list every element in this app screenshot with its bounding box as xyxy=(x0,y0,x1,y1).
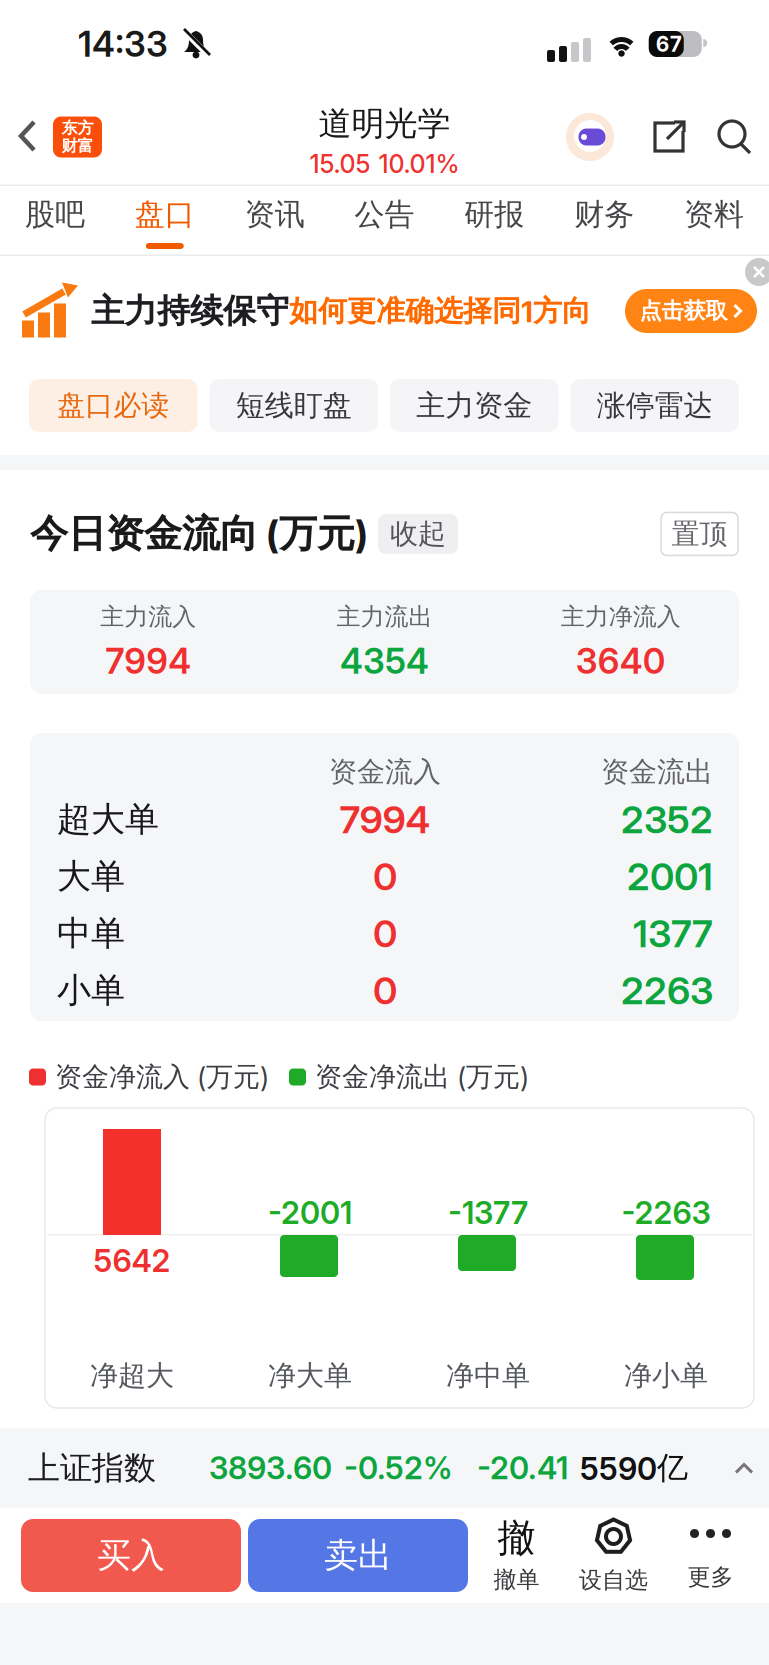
button[interactable]: 置顶 xyxy=(661,512,738,555)
staticText: 财富 xyxy=(61,136,93,156)
staticText: 主力流出 xyxy=(336,602,432,632)
staticText: 0 xyxy=(373,853,397,899)
staticText: 设自选 xyxy=(579,1565,648,1594)
staticText: 14:33 xyxy=(78,23,168,65)
staticText: 3893.60 xyxy=(209,1449,332,1487)
staticText: 中单 xyxy=(57,912,125,955)
staticText: 2263 xyxy=(621,967,713,1013)
button[interactable]: Back xyxy=(0,119,38,155)
staticText: 公告 xyxy=(354,196,414,233)
staticText: 0 xyxy=(373,910,397,956)
staticText: 1377 xyxy=(633,910,713,956)
staticText: 小单 xyxy=(57,969,125,1012)
staticText: 大单 xyxy=(57,855,125,898)
staticText: 上证指数 xyxy=(28,1448,156,1488)
staticText: 如何更准确选择同1方向 xyxy=(289,293,591,329)
staticText: 买入 xyxy=(97,1534,165,1577)
staticText: 道明光学 xyxy=(318,103,450,145)
staticText: 主力资金 xyxy=(416,387,532,424)
staticText: 研报 xyxy=(464,196,524,233)
button[interactable]: 财务 xyxy=(549,186,659,256)
button[interactable]: 资料 xyxy=(659,186,769,256)
staticText: 67 xyxy=(656,31,682,57)
button[interactable]: 收起 xyxy=(378,514,458,554)
staticText: 净小单 xyxy=(624,1358,708,1393)
button[interactable]: 股吧 xyxy=(0,186,110,256)
staticText: 超大单 xyxy=(57,798,159,841)
staticText: 资料 xyxy=(684,196,744,233)
button[interactable]: 撤 xyxy=(468,1517,565,1594)
staticText: -2001 xyxy=(268,1194,352,1231)
staticText: 5642 xyxy=(93,1242,170,1279)
staticText: -20.41 xyxy=(477,1449,568,1487)
staticText: 撤单 xyxy=(493,1565,539,1594)
staticText: 资金流出 xyxy=(601,754,713,790)
staticText: 股吧 xyxy=(25,196,85,233)
staticText: 涨停雷达 xyxy=(597,387,713,424)
staticText: 短线盯盘 xyxy=(236,387,352,424)
staticText: 2352 xyxy=(621,796,713,842)
staticText: 5590亿 xyxy=(580,1448,688,1488)
button[interactable]: 上证指数 xyxy=(0,1428,769,1508)
button[interactable]: Close xyxy=(741,256,769,284)
staticText: 资讯 xyxy=(245,196,305,233)
staticText: 4354 xyxy=(340,640,429,682)
staticText: 置顶 xyxy=(671,516,727,552)
staticText: -1377 xyxy=(448,1194,528,1231)
staticText: 7994 xyxy=(339,796,430,842)
staticText: 盘口必读 xyxy=(57,388,169,423)
button[interactable]: 研报 xyxy=(439,186,549,256)
staticText: 0 xyxy=(373,967,397,1013)
staticText: 主力持续保守 xyxy=(91,290,289,332)
button[interactable]: 盘口 xyxy=(110,186,220,256)
button[interactable]: 资讯 xyxy=(220,186,330,256)
staticText: 盘口 xyxy=(135,196,195,233)
staticText: 主力净流入 xyxy=(561,602,681,632)
staticText: 卖出 xyxy=(324,1534,392,1577)
button[interactable]: 主力资金 xyxy=(390,379,558,432)
button[interactable]: 点击获取 xyxy=(625,289,769,333)
staticText: 10.01% xyxy=(378,149,459,179)
button[interactable]: Search xyxy=(688,117,755,157)
staticText: 净超大 xyxy=(90,1358,174,1393)
staticText: 资金净流出 (万元) xyxy=(315,1060,529,1094)
button[interactable]: Share xyxy=(614,118,688,156)
staticText: 资金净流入 (万元) xyxy=(55,1060,269,1094)
button[interactable]: 卖出 xyxy=(241,1519,468,1592)
staticText: 2001 xyxy=(627,853,713,899)
staticText: 撤 xyxy=(497,1514,535,1562)
staticText: 点击获取 xyxy=(639,297,727,325)
staticText: -2263 xyxy=(621,1194,710,1231)
button[interactable]: 涨停雷达 xyxy=(570,379,739,432)
staticText: 收起 xyxy=(390,516,446,552)
staticText: 净大单 xyxy=(268,1358,352,1393)
button[interactable]: 设自选 xyxy=(565,1516,662,1594)
staticText: 7994 xyxy=(105,640,191,682)
button[interactable]: 盘口必读 xyxy=(29,379,197,432)
staticText: 主力流入 xyxy=(100,602,196,632)
staticText: 更多 xyxy=(687,1562,733,1591)
staticText: 财务 xyxy=(574,196,634,233)
staticText: 15.05 xyxy=(309,149,370,179)
button[interactable]: 短线盯盘 xyxy=(209,379,378,432)
staticText: 3640 xyxy=(576,640,666,682)
staticText: 资金流入 xyxy=(329,754,441,790)
staticText: 今日资金流向 (万元) xyxy=(30,510,368,558)
staticText: 东方 xyxy=(61,118,93,138)
button[interactable]: 更多 xyxy=(662,1519,759,1591)
staticText: -0.52% xyxy=(344,1449,453,1487)
button[interactable]: 公告 xyxy=(330,186,439,256)
button[interactable]: 智能助手 xyxy=(566,113,614,161)
button[interactable]: 东方财富 xyxy=(38,116,102,157)
button[interactable]: 买入 xyxy=(21,1519,241,1592)
staticText: 净中单 xyxy=(446,1358,530,1393)
